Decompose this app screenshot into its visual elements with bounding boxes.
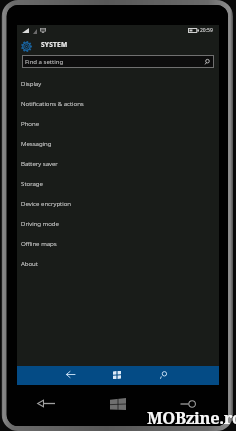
button[interactable]: Find a setting [22, 55, 214, 68]
staticText: Battery saver [21, 159, 58, 167]
staticText: Phone [21, 119, 40, 127]
button[interactable]: Back [57, 365, 84, 384]
button[interactable]: Search [175, 395, 201, 412]
staticText: SYSTEM [41, 40, 68, 49]
button[interactable]: Back [33, 395, 59, 412]
button[interactable]: Search [150, 365, 177, 384]
staticText: Find a setting [25, 58, 64, 66]
button[interactable]: Start [103, 365, 130, 384]
button[interactable]: Storage [17, 173, 219, 193]
button[interactable]: Device encryption [17, 193, 219, 213]
staticText: Device encryption [21, 199, 71, 207]
button[interactable]: Start [105, 395, 131, 412]
staticText: Offline maps [21, 239, 57, 247]
staticText: Messaging [21, 139, 52, 147]
staticText: Driving mode [21, 219, 59, 227]
button[interactable]: Notifications & actions [17, 93, 219, 113]
staticText: Display [21, 79, 42, 87]
button[interactable]: About [17, 253, 219, 273]
button[interactable]: Messaging [17, 133, 219, 153]
button[interactable]: Battery saver [17, 153, 219, 173]
staticText: Storage [21, 179, 43, 187]
staticText: MOBzine.ro [147, 406, 236, 428]
staticText: About [21, 259, 38, 267]
staticText: Notifications & actions [21, 99, 84, 107]
button[interactable]: Driving mode [17, 213, 219, 233]
staticText: 20:59 [200, 27, 213, 34]
button[interactable]: Display [17, 73, 219, 93]
button[interactable]: Phone [17, 113, 219, 133]
button[interactable]: Offline maps [17, 233, 219, 253]
